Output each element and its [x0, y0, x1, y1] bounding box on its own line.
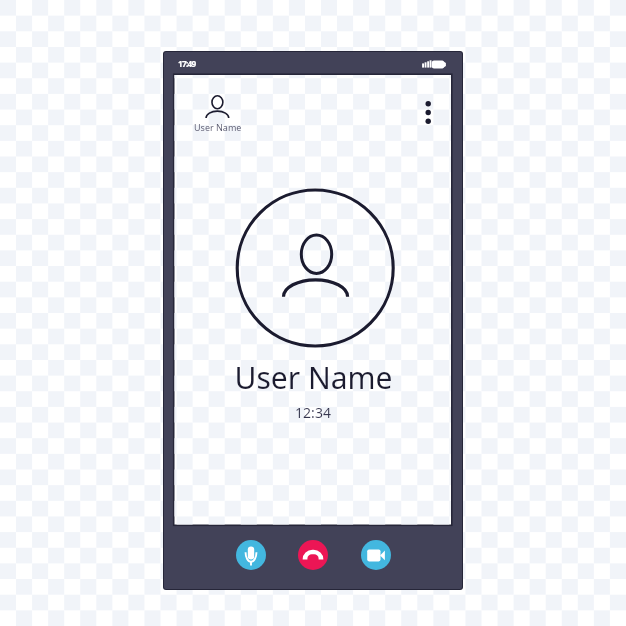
staticText: User Name [194, 121, 242, 133]
button[interactable]: Turn off camera [361, 540, 391, 570]
staticText: 12:34 [295, 403, 331, 422]
button[interactable]: End call [298, 540, 328, 570]
button[interactable]: More options [418, 93, 440, 129]
button[interactable]: User Name [190, 90, 240, 132]
button[interactable]: Mute microphone [236, 540, 266, 570]
staticText: 17:49 [178, 58, 196, 69]
staticText: User Name [234, 357, 393, 398]
